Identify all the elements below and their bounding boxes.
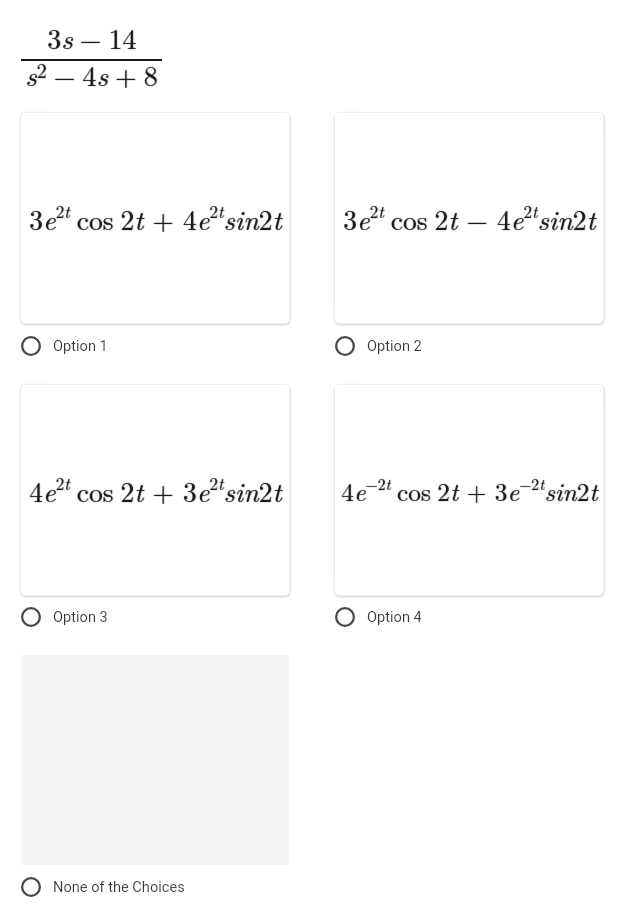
button[interactable]: Option 2	[335, 331, 595, 361]
staticText: None of the Choices	[53, 878, 185, 895]
button[interactable]: Option 1	[21, 331, 281, 361]
staticText: 3e2t cos 2t − 4e2tsin2t	[343, 199, 596, 238]
button[interactable]: 4e−2t cos 2t + 3e−2tsin2t	[334, 384, 604, 596]
staticText: 3s − 14	[47, 17, 137, 57]
button[interactable]: 3e2t cos 2t − 4e2tsin2t	[334, 112, 604, 324]
staticText: Option 4	[367, 608, 422, 625]
staticText: s2 − 4s + 8	[25, 54, 158, 94]
button[interactable]: 3e2t cos 2t + 4e2tsin2t	[20, 112, 290, 324]
button[interactable]: None of the Choices	[21, 872, 301, 902]
staticText: 4e2t cos 2t + 3e2tsin2t	[29, 471, 282, 510]
staticText: Option 2	[367, 337, 422, 354]
button[interactable]: Option 3	[21, 602, 281, 632]
staticText: 4e−2t cos 2t + 3e−2tsin2t	[341, 472, 598, 508]
staticText: Option 1	[53, 337, 108, 354]
button[interactable]: Option 4	[335, 602, 595, 632]
staticText: 3e2t cos 2t + 4e2tsin2t	[29, 199, 282, 238]
staticText: Option 3	[53, 608, 108, 625]
button[interactable]: 4e2t cos 2t + 3e2tsin2t	[20, 384, 290, 596]
